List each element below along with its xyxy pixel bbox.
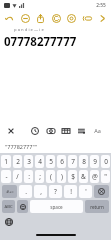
staticText: 1 (4, 157, 8, 166)
staticText: " (104, 172, 107, 181)
staticText: 5 (49, 157, 53, 166)
staticText: 6 (60, 157, 64, 166)
staticText: Aa (94, 127, 101, 134)
button[interactable]: Table (59, 124, 72, 137)
staticText: & (81, 172, 86, 181)
button[interactable]: 5 (46, 155, 55, 168)
button[interactable]: 1 (1, 155, 11, 168)
button[interactable]: - (1, 170, 11, 183)
staticText: return (90, 204, 104, 210)
staticText: space (50, 204, 63, 210)
staticText: . (25, 187, 27, 196)
button[interactable]: Format list (75, 124, 88, 137)
button[interactable]: 8 (79, 155, 88, 168)
button[interactable]: 0 (101, 155, 110, 168)
staticText: / (16, 172, 19, 181)
button[interactable]: Close (4, 124, 17, 137)
button[interactable]: Share (34, 12, 46, 24)
button[interactable]: Backspace (94, 185, 109, 198)
staticText: ! (70, 187, 72, 196)
button[interactable]: @ (90, 170, 99, 183)
button[interactable]: Change keyboard (4, 217, 14, 227)
button[interactable]: $ (68, 170, 77, 183)
button[interactable]: , (34, 185, 47, 198)
button[interactable]: More (96, 12, 108, 24)
staticText: 3 (27, 157, 31, 166)
staticText: #+= (6, 189, 14, 195)
button[interactable]: 2 (13, 155, 22, 168)
button[interactable]: Mute (19, 12, 31, 24)
staticText: : (28, 172, 30, 181)
button[interactable]: "77782777"" (3, 141, 108, 151)
button[interactable]: Text format (91, 124, 104, 137)
staticText: 2:55 (96, 2, 106, 9)
button[interactable]: : (24, 170, 33, 183)
button[interactable]: " (101, 170, 110, 183)
button[interactable]: ABC (2, 200, 15, 213)
button[interactable]: ( (46, 170, 55, 183)
staticText: 9 (93, 157, 97, 166)
button[interactable]: 9 (90, 155, 99, 168)
button[interactable]: 3 (24, 155, 33, 168)
staticText: 7 (71, 157, 75, 166)
button[interactable]: ? (49, 185, 62, 198)
button[interactable]: ; (35, 170, 44, 183)
staticText: 0 (104, 157, 108, 166)
staticText: p a n d i e — i e (14, 27, 111, 33)
button[interactable]: ) (57, 170, 66, 183)
button[interactable]: Camera (44, 124, 57, 137)
button[interactable]: ! (64, 185, 77, 198)
button[interactable]: Keypad (81, 12, 93, 24)
button[interactable]: Record (65, 12, 77, 24)
staticText: "77782777"" (5, 143, 37, 150)
staticText: - (5, 172, 8, 181)
button[interactable]: ' (79, 185, 92, 198)
staticText: ? (54, 187, 57, 196)
staticText: ' (85, 187, 87, 196)
button[interactable]: space (30, 200, 83, 213)
button[interactable]: & (79, 170, 88, 183)
staticText: ; (39, 172, 41, 181)
button[interactable]: / (13, 170, 22, 183)
button[interactable]: Emoji (17, 200, 28, 213)
staticText: ABC (4, 204, 13, 210)
button[interactable]: 7 (68, 155, 77, 168)
staticText: , (40, 187, 42, 196)
staticText: $ (71, 172, 75, 181)
staticText: 2 (16, 157, 20, 166)
staticText: @ (92, 172, 98, 181)
button[interactable]: return (85, 200, 109, 213)
button[interactable]: History (50, 12, 62, 24)
button[interactable]: #+= (2, 185, 17, 198)
staticText: 07778277777 (4, 34, 111, 50)
staticText: ) (61, 172, 63, 181)
button[interactable]: Back (3, 12, 15, 24)
button[interactable]: 6 (57, 155, 66, 168)
button[interactable]: . (19, 185, 32, 198)
staticText: ( (50, 172, 52, 181)
button[interactable]: 4 (35, 155, 44, 168)
button[interactable]: Recents (28, 124, 41, 137)
staticText: 4 (38, 157, 42, 166)
staticText: 8 (82, 157, 86, 166)
